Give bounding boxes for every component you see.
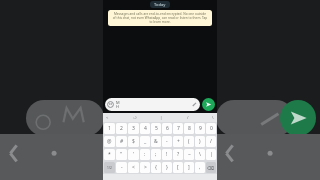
- button[interactable]: !: [162, 149, 172, 160]
- staticText: :: [144, 151, 146, 158]
- staticText: ,: [199, 164, 201, 171]
- button[interactable]: 0: [206, 123, 216, 134]
- staticText: 2: [120, 125, 123, 132]
- button[interactable]: ": [116, 149, 127, 160]
- button[interactable]: +: [173, 136, 183, 147]
- button[interactable]: 1: [104, 123, 115, 134]
- staticText: ;: [155, 151, 157, 158]
- staticText: +: [177, 138, 180, 145]
- staticText: (: [188, 138, 190, 145]
- staticText: ~: [188, 151, 191, 158]
- button[interactable]: :-): [133, 115, 137, 120]
- staticText: &: [154, 138, 158, 145]
- button[interactable]: :: [140, 149, 150, 160]
- button[interactable]: -: [116, 162, 127, 173]
- staticText: :-): [133, 115, 137, 120]
- button[interactable]: &: [151, 136, 161, 147]
- button[interactable]: Messages and calls are end-to-end encryp…: [112, 12, 208, 24]
- staticText: ⌫: [207, 165, 215, 171]
- staticText: 5: [155, 125, 158, 132]
- button[interactable]: $: [128, 136, 139, 147]
- button[interactable]: 6: [162, 123, 172, 134]
- button[interactable]: 4: [140, 123, 150, 134]
- staticText: |: [210, 151, 213, 158]
- staticText: 1: [108, 125, 111, 132]
- button[interactable]: 2: [116, 123, 127, 134]
- staticText: _: [144, 138, 147, 145]
- button[interactable]: ⌫: [206, 162, 216, 173]
- staticText: <: [106, 115, 109, 120]
- staticText: 9: [199, 125, 202, 132]
- staticText: }: [166, 164, 168, 171]
- staticText: 6: [166, 125, 169, 132]
- button[interactable]: \: [195, 149, 205, 160]
- staticText: *: [108, 151, 111, 158]
- button[interactable]: ;: [151, 149, 161, 160]
- button[interactable]: }: [162, 162, 172, 173]
- staticText: {: [155, 164, 157, 171]
- staticText: ?: [177, 151, 180, 158]
- button[interactable]: <: [128, 162, 139, 173]
- staticText: #: [120, 138, 124, 145]
- button[interactable]: @: [104, 136, 115, 147]
- staticText: 3: [132, 125, 135, 132]
- staticText: ]: [188, 164, 190, 171]
- staticText: ): [199, 138, 201, 145]
- other: Emoji: [107, 101, 114, 108]
- staticText: !: [166, 151, 168, 158]
- button[interactable]: #: [116, 136, 127, 147]
- staticText: 4: [144, 125, 147, 132]
- button[interactable]: Send: [202, 98, 215, 111]
- button[interactable]: 7: [173, 123, 183, 134]
- button[interactable]: ,: [195, 162, 205, 173]
- staticText: >: [144, 164, 147, 171]
- button[interactable]: *: [104, 149, 115, 160]
- button[interactable]: 5: [151, 123, 161, 134]
- staticText: ': [133, 151, 135, 158]
- button[interactable]: ?: [173, 149, 183, 160]
- staticText: -: [121, 164, 123, 171]
- button[interactable]: >: [140, 162, 150, 173]
- staticText: 8: [188, 125, 191, 132]
- staticText: \: [212, 115, 214, 120]
- other: Attach: [191, 101, 198, 108]
- staticText: @: [107, 138, 112, 145]
- button[interactable]: (: [184, 136, 194, 147]
- button[interactable]: /: [206, 136, 216, 147]
- staticText: Today: [154, 2, 166, 7]
- button[interactable]: [: [173, 162, 183, 173]
- staticText: \: [199, 151, 201, 158]
- button[interactable]: ): [195, 136, 205, 147]
- button[interactable]: _: [140, 136, 150, 147]
- button[interactable]: 3: [128, 123, 139, 134]
- button[interactable]: <: [106, 115, 109, 120]
- staticText: ": [120, 151, 123, 158]
- staticText: M H: [116, 100, 120, 109]
- button[interactable]: ': [128, 149, 139, 160]
- button[interactable]: 8: [184, 123, 194, 134]
- staticText: 7: [177, 125, 180, 132]
- staticText: |: [160, 115, 163, 120]
- button[interactable]: Today: [154, 2, 166, 7]
- staticText: /: [210, 138, 212, 145]
- staticText: Messages and calls are end-to-end encryp…: [112, 12, 208, 24]
- button[interactable]: -: [162, 136, 172, 147]
- button[interactable]: 1/2: [104, 162, 115, 173]
- button[interactable]: 9: [195, 123, 205, 134]
- staticText: 0: [210, 125, 213, 132]
- staticText: -: [166, 138, 168, 145]
- button[interactable]: |: [206, 149, 216, 160]
- staticText: <: [132, 164, 135, 171]
- staticText: $: [132, 138, 135, 145]
- button[interactable]: \: [212, 115, 214, 120]
- button[interactable]: ~: [184, 149, 194, 160]
- button[interactable]: ]: [184, 162, 194, 173]
- staticText: 1/2: [107, 166, 112, 170]
- button[interactable]: |: [160, 115, 163, 120]
- button[interactable]: /: [187, 115, 189, 120]
- staticText: [: [177, 164, 179, 171]
- button[interactable]: {: [151, 162, 161, 173]
- staticText: /: [187, 115, 189, 120]
- button[interactable]: Emoji: [107, 98, 198, 111]
